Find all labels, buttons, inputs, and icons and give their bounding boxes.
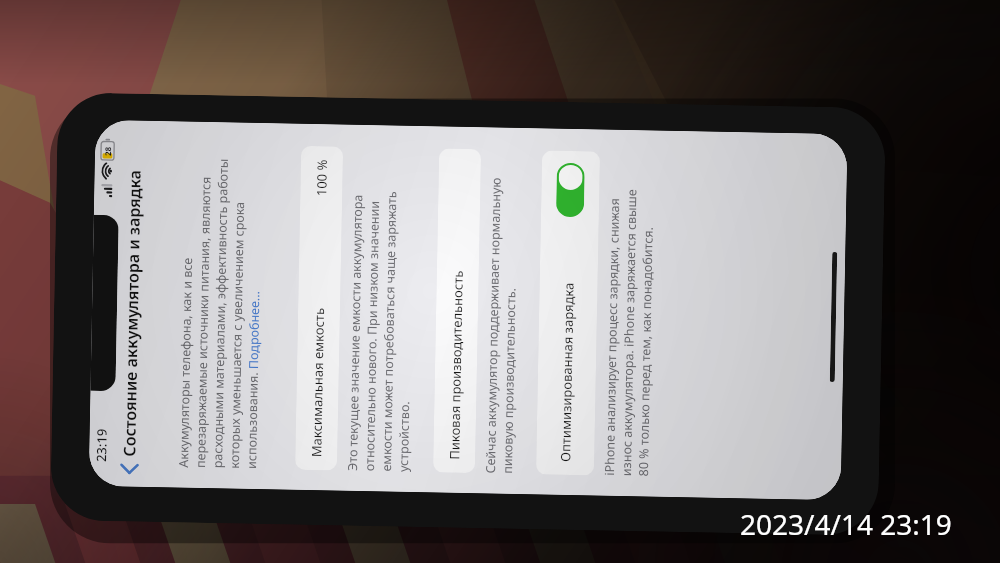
button[interactable]: Пиковая производительность — [433, 148, 481, 473]
staticText: iPhone анализирует процесс зарядки, сниж… — [601, 189, 657, 476]
staticText: Аккумуляторы телефона, как и все перезар… — [175, 157, 266, 469]
staticText: 23:19 — [92, 428, 111, 462]
staticText: 28 — [102, 146, 113, 156]
button[interactable]: Back — [113, 456, 145, 484]
button[interactable]: Максимальная емкость — [295, 146, 343, 470]
staticText: Состояние аккумулятора и зарядка — [118, 169, 146, 457]
button[interactable]: Оптимизированная зарядка — [536, 150, 600, 475]
staticText: Сейчас аккумулятор поддерживает нормальн… — [482, 177, 522, 474]
staticText: Максимальная емкость — [307, 307, 328, 457]
staticText: Это текущее значение емкости аккумулятор… — [344, 190, 417, 472]
staticText: Оптимизированная зарядка — [556, 282, 578, 462]
staticText: 2023/4/14 23:19 — [740, 505, 952, 543]
staticText: 100 % — [312, 159, 331, 196]
staticText: Пиковая производительность — [445, 270, 467, 460]
button[interactable]: Optimized charging toggle — [556, 163, 585, 217]
